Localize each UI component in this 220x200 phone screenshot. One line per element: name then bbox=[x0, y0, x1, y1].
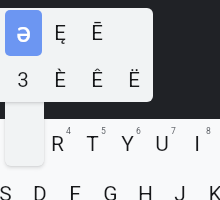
button[interactable] bbox=[109, 121, 144, 165]
button[interactable] bbox=[39, 121, 74, 165]
staticText: F bbox=[69, 182, 81, 200]
staticText: U bbox=[155, 132, 169, 157]
button[interactable] bbox=[179, 121, 214, 165]
staticText: G bbox=[103, 182, 118, 200]
button[interactable] bbox=[0, 171, 22, 200]
staticText: T bbox=[86, 132, 99, 157]
staticText: I bbox=[194, 132, 200, 157]
staticText: Ê bbox=[91, 68, 103, 92]
staticText: Ë bbox=[128, 68, 140, 92]
staticText: Ē bbox=[91, 21, 103, 45]
button[interactable] bbox=[41, 56, 78, 102]
staticText: Y bbox=[121, 132, 134, 157]
button[interactable] bbox=[22, 171, 57, 200]
staticText: D bbox=[33, 182, 47, 200]
button[interactable] bbox=[79, 56, 116, 102]
staticText: H bbox=[138, 182, 153, 200]
button[interactable] bbox=[116, 56, 153, 102]
staticText: S bbox=[0, 182, 12, 200]
staticText: 7 bbox=[171, 126, 176, 136]
button[interactable] bbox=[74, 121, 109, 165]
staticText: R bbox=[51, 132, 64, 157]
staticText: 4 bbox=[66, 126, 71, 136]
staticText: 3 bbox=[17, 68, 29, 92]
button[interactable] bbox=[92, 171, 127, 200]
button[interactable] bbox=[57, 171, 92, 200]
button[interactable] bbox=[197, 171, 220, 200]
staticText: J bbox=[174, 182, 186, 200]
button[interactable]: schwa bbox=[5, 10, 42, 56]
other: Pressed key bbox=[5, 60, 44, 166]
button[interactable] bbox=[79, 10, 116, 56]
button[interactable] bbox=[127, 171, 162, 200]
staticText: K bbox=[208, 182, 220, 200]
staticText: ə bbox=[16, 16, 31, 49]
staticText: È bbox=[54, 68, 66, 92]
staticText: 6 bbox=[136, 126, 141, 136]
button[interactable] bbox=[144, 121, 179, 165]
button[interactable] bbox=[162, 171, 197, 200]
button[interactable] bbox=[4, 56, 41, 102]
button[interactable] bbox=[41, 10, 78, 56]
staticText: 8 bbox=[206, 126, 211, 136]
staticText: 5 bbox=[101, 126, 106, 136]
staticText: Ę bbox=[54, 21, 66, 45]
